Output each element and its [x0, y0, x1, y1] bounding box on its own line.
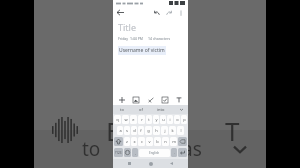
staticText: x	[133, 139, 136, 144]
staticText: s	[126, 128, 128, 133]
staticText: t	[148, 117, 150, 122]
staticText: o	[176, 117, 179, 122]
staticText: D	[166, 113, 185, 148]
staticText: k	[171, 128, 174, 133]
button[interactable]: Redo	[164, 8, 173, 17]
button[interactable]: s	[124, 126, 130, 135]
button[interactable]: a	[117, 126, 123, 135]
staticText: v	[148, 139, 151, 144]
staticText: j	[164, 128, 166, 133]
button[interactable]: r	[138, 115, 145, 124]
staticText: b	[156, 139, 159, 144]
staticText: c	[141, 139, 143, 144]
button[interactable]: Username of victim	[119, 47, 165, 54]
staticText: of	[139, 107, 143, 112]
button[interactable]: Text format	[174, 95, 184, 105]
staticText: f	[140, 128, 142, 133]
button[interactable]: Backspace	[178, 137, 187, 146]
button[interactable]: .	[171, 148, 177, 157]
staticText: u	[162, 117, 165, 122]
button[interactable]: English	[139, 149, 170, 157]
button[interactable]: Undo	[152, 8, 161, 17]
staticText: T	[225, 113, 240, 148]
staticText: Username of victim	[119, 47, 165, 54]
button[interactable]: Recents	[125, 159, 134, 168]
button[interactable]: b	[154, 137, 161, 146]
staticText: into	[157, 107, 165, 112]
button[interactable]: f	[138, 126, 144, 135]
staticText: to	[120, 107, 124, 112]
button[interactable]: g	[145, 126, 152, 135]
button[interactable]: Enter	[178, 148, 187, 157]
button[interactable]: p	[181, 115, 187, 124]
staticText: ,	[135, 151, 136, 155]
staticText: l	[180, 128, 182, 133]
button[interactable]: m	[170, 137, 177, 146]
button[interactable]: Checkbox	[160, 95, 170, 105]
staticText: as	[182, 136, 202, 162]
button[interactable]: v	[146, 137, 153, 146]
staticText: a	[119, 128, 122, 133]
button[interactable]: d	[131, 126, 137, 135]
button[interactable]: Emoji	[124, 148, 131, 157]
staticText: English	[149, 151, 160, 155]
button[interactable]: n	[162, 137, 169, 146]
staticText: d	[133, 128, 136, 133]
staticText: to	[82, 136, 101, 162]
staticText: e	[132, 117, 135, 122]
staticText: q	[116, 117, 119, 122]
staticText: i	[169, 117, 171, 122]
staticText: 14 characters	[148, 36, 171, 41]
button[interactable]: i	[167, 115, 173, 124]
button[interactable]: Shift	[114, 137, 123, 146]
button[interactable]: ?123	[114, 148, 123, 157]
staticText: m	[172, 139, 176, 144]
staticText: .	[174, 151, 175, 155]
staticText: g	[147, 128, 150, 133]
button[interactable]: e	[130, 115, 137, 124]
button[interactable]: Add	[117, 95, 127, 105]
button[interactable]: ,	[132, 148, 138, 157]
staticText: y	[155, 117, 158, 122]
button[interactable]: c	[138, 137, 145, 146]
button[interactable]: x	[131, 137, 137, 146]
button[interactable]: j	[161, 126, 168, 135]
button[interactable]: q	[114, 115, 121, 124]
button[interactable]: t	[146, 115, 152, 124]
button[interactable]: Image	[131, 95, 141, 105]
staticText: h	[155, 128, 158, 133]
button[interactable]: Draw	[146, 95, 156, 105]
button[interactable]: Back	[167, 159, 176, 168]
button[interactable]: Back	[116, 8, 125, 17]
staticText: n	[164, 139, 167, 144]
button[interactable]: h	[153, 126, 160, 135]
button[interactable]: k	[169, 126, 176, 135]
button[interactable]: y	[153, 115, 159, 124]
staticText: r	[141, 117, 143, 122]
staticText: B	[106, 113, 123, 148]
staticText: Title	[118, 21, 136, 33]
staticText: p	[183, 117, 186, 122]
staticText: Friday 1:44 PM	[118, 36, 144, 41]
button[interactable]: More options	[176, 8, 185, 17]
button[interactable]: o	[174, 115, 180, 124]
button[interactable]: Home	[146, 159, 155, 168]
staticText: ?123	[115, 151, 122, 155]
staticText: z	[126, 139, 128, 144]
staticText: w	[124, 117, 128, 122]
button[interactable]: u	[160, 115, 166, 124]
button[interactable]: z	[124, 137, 130, 146]
button[interactable]: w	[122, 115, 129, 124]
button[interactable]: l	[177, 126, 184, 135]
